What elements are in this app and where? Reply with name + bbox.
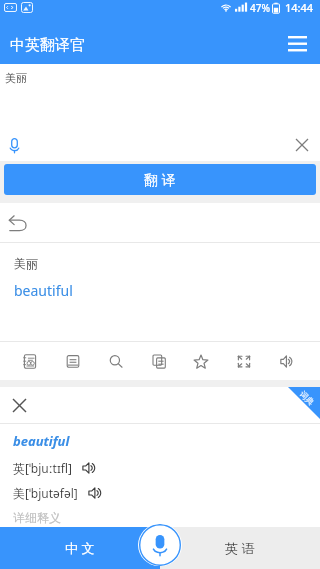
button[interactable]: 翻 译 [4, 164, 316, 195]
button[interactable]: Play pronunciation [85, 483, 105, 503]
staticText: 翻 译 [144, 170, 176, 189]
staticText: beautiful [13, 432, 70, 450]
button[interactable]: Menu [282, 28, 312, 58]
staticText: 47% [250, 1, 270, 15]
button[interactable]: Play pronunciation [79, 458, 99, 478]
button[interactable]: Search [101, 346, 131, 376]
staticText: beautiful [14, 281, 73, 300]
staticText: 美[ˈbjutəfəl] [13, 485, 78, 501]
button[interactable]: Copy [144, 346, 174, 376]
staticText: 美丽 [14, 256, 38, 271]
button[interactable]: Close [6, 392, 32, 418]
button[interactable]: Speak [272, 346, 302, 376]
button[interactable]: Image translate [15, 346, 45, 376]
button[interactable]: Dictionary [58, 346, 88, 376]
staticText: 英 语 [225, 539, 255, 557]
button[interactable]: Favorite [186, 346, 216, 376]
button[interactable]: 中 文 [0, 527, 160, 569]
staticText: 词典 [298, 389, 316, 407]
staticText: 美丽 [5, 71, 27, 85]
staticText: 详细释义 [13, 510, 61, 525]
button[interactable]: Voice [138, 524, 182, 566]
button[interactable]: Fullscreen [229, 346, 259, 376]
button[interactable]: 英 语 [160, 527, 320, 569]
staticText: 中英翻译官 [10, 36, 85, 55]
staticText: 中 文 [65, 539, 95, 557]
button[interactable]: Clear [290, 133, 314, 157]
staticText: 14:44 [285, 0, 314, 15]
button[interactable]: Voice input [2, 133, 26, 157]
staticText: 英[ˈbjuːtɪfl] [13, 460, 72, 476]
button[interactable]: Undo [4, 208, 34, 238]
